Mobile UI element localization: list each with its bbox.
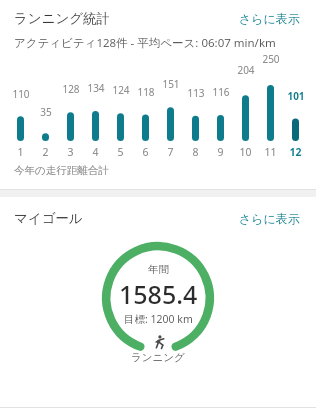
staticText: 113 [187, 86, 205, 100]
staticText: 35 [40, 105, 52, 119]
other: ランニング [150, 334, 166, 350]
staticText: 12 [289, 145, 302, 159]
button[interactable]: 年間 [102, 242, 214, 354]
staticText: 年間 [148, 263, 169, 276]
staticText: 101 [287, 89, 305, 103]
staticText: 10 [239, 145, 252, 159]
staticText: マイゴール [14, 210, 83, 227]
staticText: 1585.4 [119, 277, 198, 311]
staticText: 116 [212, 85, 230, 99]
button[interactable]: さらに表示 [237, 9, 302, 28]
staticText: 128 [62, 82, 80, 96]
staticText: ランニング [131, 351, 185, 364]
staticText: ランニング統計 [14, 10, 111, 27]
staticText: 11 [264, 145, 277, 159]
staticText: 204 [237, 63, 255, 77]
staticText: 9 [217, 145, 224, 159]
staticText: 6 [142, 145, 149, 159]
staticText: 124 [112, 83, 130, 97]
staticText: 134 [87, 81, 105, 95]
staticText: 8 [192, 145, 199, 159]
staticText: 151 [162, 77, 180, 91]
staticText: 118 [137, 85, 155, 99]
staticText: 7 [167, 145, 174, 159]
staticText: さらに表示 [239, 211, 300, 226]
staticText: 110 [12, 87, 30, 101]
staticText: 1 [17, 145, 24, 159]
staticText: さらに表示 [239, 11, 300, 26]
staticText: 4 [92, 145, 99, 159]
button[interactable]: さらに表示 [237, 209, 302, 228]
staticText: アクティビティ128件 - 平均ペース: 06:07 min/km [14, 35, 276, 51]
staticText: 今年の走行距離合計 [14, 164, 109, 177]
staticText: 5 [117, 145, 124, 159]
staticText: 3 [67, 145, 74, 159]
staticText: 250 [262, 52, 280, 66]
staticText: 2 [42, 145, 49, 159]
staticText: 目標: 1200 km [124, 312, 193, 326]
